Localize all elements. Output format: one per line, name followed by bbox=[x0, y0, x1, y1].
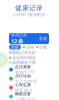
staticText: 血压测量 bbox=[15, 64, 31, 69]
staticText: 查看 bbox=[39, 36, 47, 41]
button[interactable]: 心率监测 bbox=[9, 83, 49, 92]
button[interactable]: 睡眠质量 bbox=[9, 92, 49, 100]
staticText: 血压保持稳定 bbox=[12, 55, 36, 60]
staticText: 心率监测 bbox=[15, 82, 31, 87]
staticText: 健康记录 bbox=[15, 4, 43, 12]
button[interactable]: 血压测量 bbox=[9, 65, 49, 74]
button[interactable]: 步行运动 bbox=[9, 74, 49, 83]
staticText: 今日 8240 步 bbox=[15, 78, 37, 84]
staticText: 收缩压 118 bbox=[15, 69, 34, 75]
staticText: 运动 bbox=[26, 45, 34, 49]
staticText: 体重略有下降 bbox=[12, 60, 36, 65]
staticText: 睡眠记录良好 bbox=[12, 50, 36, 55]
staticText: 饮食 bbox=[39, 45, 47, 49]
staticText: 全部 bbox=[11, 45, 19, 49]
staticText: 睡眠质量 bbox=[15, 91, 31, 96]
staticText: 12 条 bbox=[11, 37, 23, 45]
staticText: 步行运动 bbox=[15, 73, 31, 78]
staticText: 记录每日健康数据 bbox=[13, 12, 45, 17]
staticText: 7 小时 20 分 bbox=[15, 96, 36, 100]
staticText: 本周记录 bbox=[11, 33, 27, 37]
staticText: 静息 68 次 bbox=[15, 87, 33, 93]
